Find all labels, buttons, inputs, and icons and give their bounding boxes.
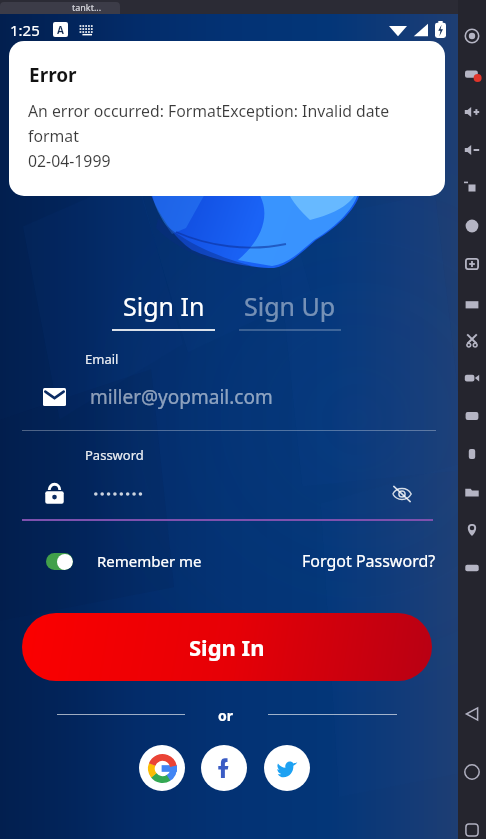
button[interactable]: Back [458, 700, 486, 728]
button[interactable]: Sign in with Twitter [264, 745, 310, 791]
button[interactable]: Folder [458, 478, 486, 506]
staticText: miller@yopmail.com [90, 384, 273, 410]
button[interactable]: Remember me [40, 551, 202, 571]
staticText: An error occurred: FormatException: Inva… [28, 100, 428, 171]
button[interactable]: Show password [22, 472, 436, 516]
button[interactable]: Volume up [458, 98, 486, 126]
staticText: Sign In [123, 289, 205, 323]
button[interactable]: Sign in with Google [139, 745, 185, 791]
button[interactable]: More [458, 554, 486, 582]
button[interactable]: Recents [458, 816, 486, 839]
staticText: Email [85, 350, 119, 368]
button[interactable]: Show password [387, 479, 417, 509]
button[interactable]: Sign In [22, 613, 432, 681]
staticText: A [57, 23, 64, 37]
staticText: Remember me [97, 551, 202, 571]
button[interactable]: Sign in with Facebook [201, 745, 247, 791]
button[interactable]: miller@yopmail.com [22, 375, 436, 419]
button[interactable]: Volume down [458, 136, 486, 164]
staticText: Password [85, 446, 144, 464]
staticText: 1:25 [10, 20, 40, 40]
staticText: Forgot Password? [302, 550, 436, 572]
button[interactable]: Install APK [458, 288, 486, 316]
button[interactable]: Power [458, 22, 486, 50]
button[interactable]: Record [458, 212, 486, 240]
button[interactable]: Rotate [458, 60, 486, 88]
staticText: Error [29, 62, 77, 88]
button[interactable]: Video [458, 364, 486, 392]
button[interactable]: Screenshot [458, 174, 486, 202]
button[interactable]: Location [458, 516, 486, 544]
staticText: tankt... [72, 1, 102, 13]
button[interactable]: Sign In [112, 289, 215, 331]
button[interactable]: Vibrate [458, 440, 486, 468]
staticText: Sign In [189, 632, 265, 662]
staticText: or [218, 706, 234, 725]
button[interactable]: Settings [458, 402, 486, 430]
button[interactable]: Sign Up [239, 289, 341, 331]
button[interactable]: Home [458, 758, 486, 786]
button[interactable]: Add [458, 250, 486, 278]
button[interactable]: Snip [458, 326, 486, 354]
staticText: Sign Up [244, 289, 336, 323]
button[interactable]: Forgot Password? [302, 550, 436, 572]
